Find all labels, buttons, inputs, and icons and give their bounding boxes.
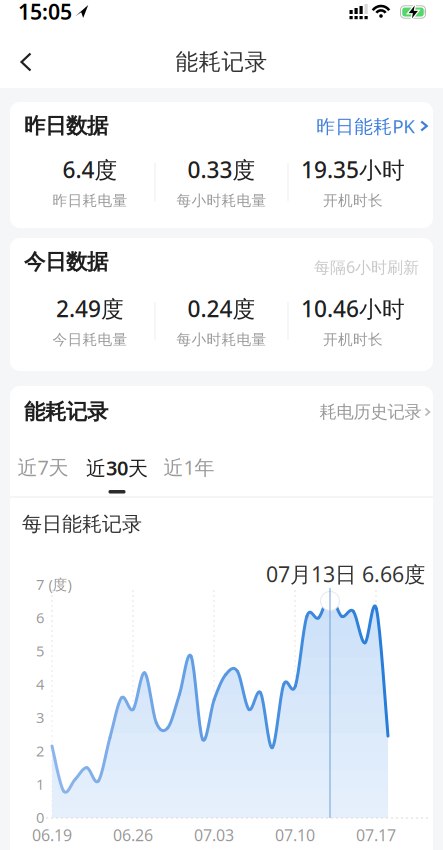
staticText: (度)	[48, 575, 71, 594]
staticText: 4	[36, 674, 44, 694]
staticText: 2	[36, 741, 44, 760]
staticText: 2.49度	[56, 293, 124, 323]
staticText: 近1年	[163, 454, 214, 480]
staticText: 6	[36, 608, 44, 627]
staticText: 0	[36, 807, 44, 827]
staticText: 07.10	[275, 824, 315, 846]
staticText: 15:05	[18, 0, 72, 26]
button[interactable]: 耗电历史记录	[319, 401, 430, 423]
staticText: 昨日数据	[24, 113, 108, 139]
button[interactable]: 昨日能耗PK	[316, 114, 428, 138]
staticText: 每小时耗电量	[176, 191, 266, 209]
staticText: 昨日能耗PK	[316, 114, 415, 138]
staticText: 1	[36, 774, 44, 794]
button[interactable]: 近1年	[159, 450, 219, 484]
staticText: 开机时长	[323, 330, 383, 348]
staticText: 06.19	[32, 824, 72, 846]
staticText: 07.17	[356, 824, 396, 846]
staticText: 近30天	[86, 454, 148, 481]
staticText: 今日数据	[24, 249, 108, 275]
staticText: 近7天	[17, 454, 68, 480]
staticText: 开机时长	[323, 191, 383, 209]
staticText: 耗电历史记录	[319, 401, 421, 423]
staticText: 10.46小时	[301, 293, 405, 323]
staticText: 06.26	[113, 824, 153, 846]
staticText: 能耗记录	[175, 48, 267, 76]
staticText: 3	[36, 708, 44, 727]
staticText: 6.4度	[62, 154, 117, 184]
staticText: 每隔6小时刷新	[314, 256, 419, 278]
staticText: 7	[36, 575, 44, 594]
staticText: 每日能耗记录	[22, 512, 142, 536]
staticText: 每小时耗电量	[176, 330, 266, 348]
staticText: 0.24度	[187, 293, 255, 323]
staticText: 今日耗电量	[52, 330, 127, 348]
staticText: 5	[36, 641, 44, 661]
staticText: 0.33度	[187, 154, 255, 184]
button[interactable]: 近30天	[82, 452, 152, 496]
staticText: 昨日耗电量	[52, 191, 127, 209]
button[interactable]: 近7天	[13, 450, 73, 484]
staticText: 07.03	[194, 824, 234, 846]
staticText: 07月13日 6.66度	[266, 560, 425, 588]
staticText: 19.35小时	[301, 154, 405, 184]
staticText: 能耗记录	[24, 399, 108, 425]
button[interactable]: Back	[6, 42, 46, 82]
